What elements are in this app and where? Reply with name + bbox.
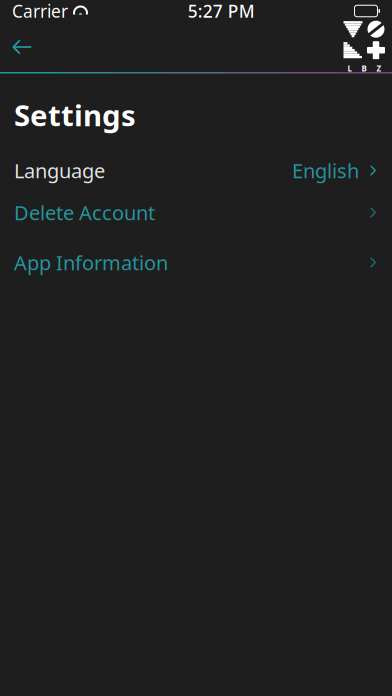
button[interactable]: App logo (343, 20, 392, 74)
staticText: App Information (14, 249, 168, 276)
staticText: Carrier (12, 0, 68, 22)
staticText: Delete Account (14, 199, 155, 226)
staticText: B (361, 63, 366, 74)
staticText: Language (14, 157, 105, 184)
staticText: Settings (14, 95, 136, 134)
staticText: L (347, 63, 351, 74)
button[interactable]: App Information (0, 242, 392, 282)
button[interactable]: Delete Account (0, 192, 392, 232)
button[interactable]: Language (0, 150, 392, 190)
staticText: 5:27 PM (188, 0, 255, 22)
button[interactable]: Back (0, 25, 44, 69)
staticText: Z (376, 63, 381, 74)
staticText: English (292, 157, 359, 184)
